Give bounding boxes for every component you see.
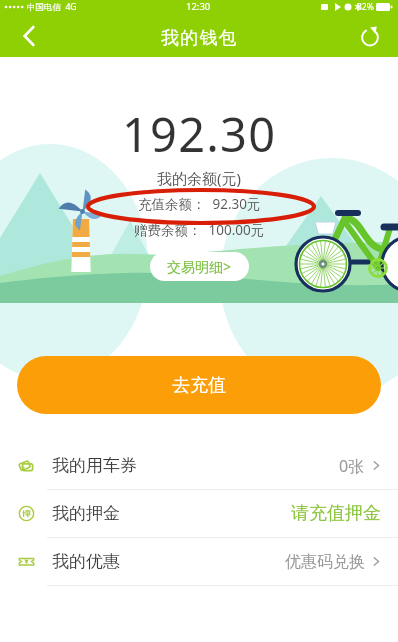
staticText: 我的优惠 — [52, 551, 120, 572]
staticText: 我的钱包 — [161, 27, 238, 50]
staticText: 交易明细> — [167, 257, 232, 276]
button[interactable]: Back — [10, 17, 48, 55]
staticText: 我的余额(元) — [157, 168, 242, 188]
staticText: 请充值押金 — [291, 502, 381, 525]
staticText: 12:30 — [186, 0, 211, 13]
staticText: 我的押金 — [52, 503, 120, 524]
staticText: 去充值 — [172, 374, 226, 397]
staticText: 我的用车券 — [52, 455, 137, 476]
staticText: 82% — [357, 1, 374, 13]
button[interactable]: 我的用车券 — [0, 442, 398, 489]
staticText: 0张 — [339, 455, 365, 477]
staticText: 充值余额： 92.30元 — [138, 195, 261, 213]
staticText: 优惠码兑换 — [285, 552, 365, 572]
staticText: 中国电信 4G — [27, 1, 77, 13]
staticText: 192.30 — [122, 102, 277, 166]
button[interactable]: 去充值 — [17, 356, 381, 414]
button[interactable]: 交易明细> — [150, 252, 249, 281]
button[interactable]: 我的优惠 — [0, 538, 398, 585]
button[interactable]: Refresh — [352, 18, 388, 54]
button[interactable]: 我的押金 — [0, 490, 398, 537]
staticText: 赠费余额： 100.00元 — [134, 221, 265, 239]
